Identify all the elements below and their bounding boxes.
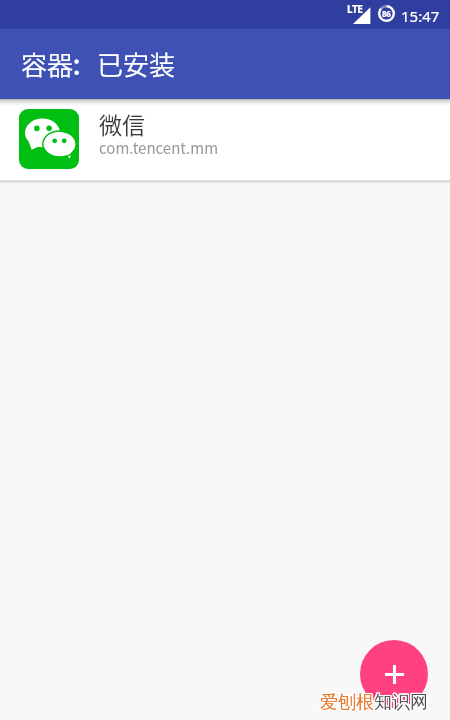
staticText: 已安装: [97, 45, 176, 83]
staticText: 爱刨根: [321, 692, 375, 715]
staticText: 知识网: [373, 690, 427, 713]
staticText: 容器: [21, 45, 74, 83]
staticText: 知识网: [374, 691, 428, 714]
staticText: 爱刨根: [319, 691, 373, 714]
staticText: 爱刨根: [321, 690, 375, 713]
staticText: 知识网: [373, 692, 427, 715]
button[interactable]: Add: [360, 640, 428, 708]
staticText: 知识网: [375, 692, 429, 715]
staticText: 爱刨根: [319, 690, 373, 713]
staticText: 知识网: [374, 690, 428, 713]
staticText: 知识网: [375, 690, 429, 713]
staticText: 知识网: [374, 692, 428, 715]
staticText: 爱刨根: [321, 691, 375, 714]
staticText: LTE: [347, 2, 363, 16]
staticText: 15:47: [401, 6, 440, 26]
staticText: 爱刨根: [320, 691, 374, 714]
staticText: 知识网: [375, 691, 429, 714]
staticText: 爱刨根: [320, 692, 374, 715]
staticText: 爱刨根: [319, 692, 373, 715]
button[interactable]: 微信: [0, 99, 450, 184]
staticText: 爱刨根: [320, 690, 374, 713]
staticText: com.tencent.mm: [99, 137, 219, 159]
staticText: 微信: [99, 107, 145, 140]
staticText: 知识网: [373, 691, 427, 714]
staticText: 86: [382, 8, 391, 19]
